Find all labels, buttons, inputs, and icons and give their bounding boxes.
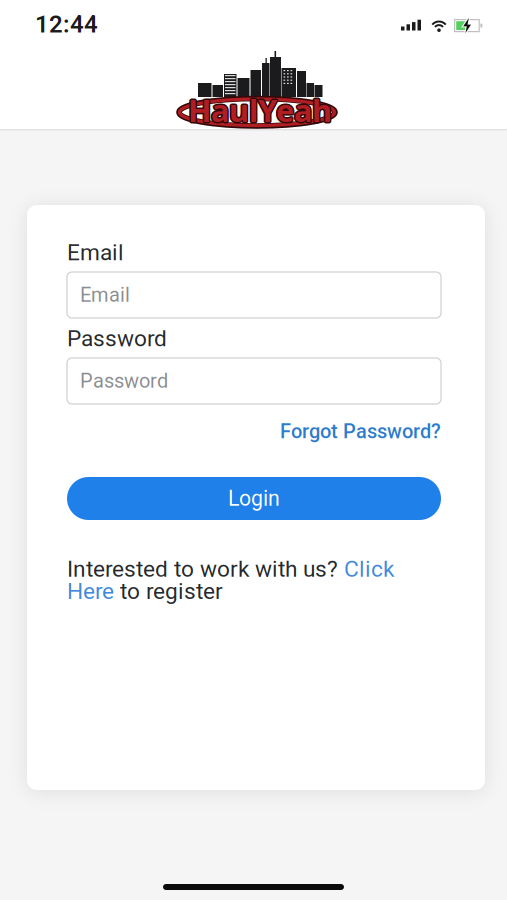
staticText: to register (114, 578, 223, 604)
staticText: HaulYeah (187, 88, 331, 130)
staticText: Here (67, 578, 114, 604)
staticText: HaulYeah (187, 90, 331, 132)
staticText: 12:44 (35, 10, 98, 38)
button[interactable]: Click (344, 556, 394, 582)
staticText: Password (67, 325, 167, 351)
staticText: HaulYeah (189, 90, 333, 132)
button[interactable]: Login (67, 477, 441, 520)
staticText: HaulYeah (189, 89, 333, 131)
staticText: HaulYeah (188, 89, 332, 131)
staticText: HaulYeah (189, 88, 333, 130)
staticText: Interested to work with us? (67, 556, 344, 582)
button[interactable]: Forgot Password? (280, 420, 441, 443)
staticText: HaulYeah (188, 88, 332, 129)
staticText: Click (344, 556, 394, 582)
staticText: Forgot Password? (280, 420, 441, 443)
staticText: Email (80, 284, 130, 306)
staticText: Password (80, 370, 168, 392)
button[interactable]: Here (67, 578, 114, 604)
staticText: Email (67, 239, 124, 265)
staticText: HaulYeah (188, 91, 332, 132)
staticText: HaulYeah (186, 89, 330, 131)
staticText: Login (228, 486, 280, 511)
